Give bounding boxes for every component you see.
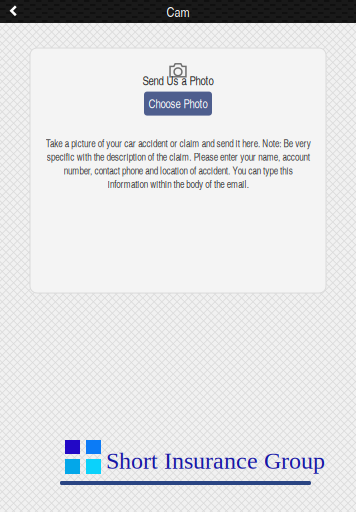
button[interactable]: Back — [0, 0, 27, 23]
staticText: Send Us a Photo — [142, 72, 213, 89]
button[interactable]: Choose Photo — [144, 92, 212, 116]
staticText: Choose Photo — [148, 95, 207, 112]
staticText: Take a picture of your car accident or c… — [45, 137, 310, 191]
staticText: Short Insurance Group — [106, 447, 325, 474]
staticText: Cam — [166, 2, 189, 21]
